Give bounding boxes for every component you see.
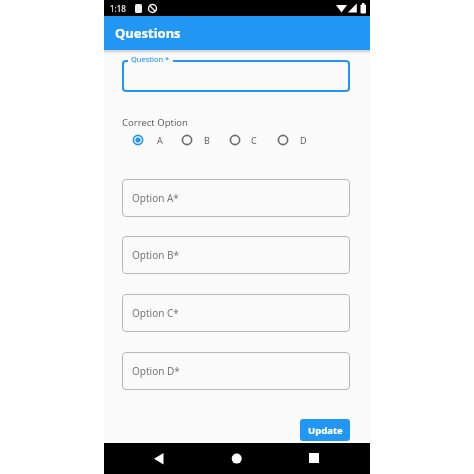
staticText: Correct Option — [122, 116, 188, 129]
button[interactable]: Option D* — [122, 352, 350, 390]
button[interactable] — [304, 448, 324, 468]
button[interactable] — [128, 130, 148, 150]
button[interactable] — [177, 130, 197, 150]
button[interactable]: Option B* — [122, 236, 350, 274]
staticText: C — [251, 134, 257, 146]
button[interactable] — [122, 60, 350, 92]
staticText: A — [157, 134, 163, 146]
button[interactable] — [227, 448, 247, 468]
staticText: Option D* — [132, 364, 180, 378]
staticText: B — [204, 134, 210, 146]
button[interactable]: Update — [300, 419, 350, 441]
button[interactable] — [149, 448, 169, 468]
staticText: Question * — [131, 54, 170, 64]
button[interactable]: Option C* — [122, 294, 350, 332]
staticText: Option A* — [132, 191, 179, 205]
staticText: Update — [308, 424, 343, 437]
staticText: D — [300, 134, 307, 146]
staticText: Option B* — [132, 248, 179, 262]
button[interactable] — [273, 130, 293, 150]
staticText: 1:18 — [110, 3, 126, 14]
staticText: Questions — [115, 24, 181, 42]
staticText: Option C* — [132, 306, 179, 320]
button[interactable]: Option A* — [122, 179, 350, 217]
button[interactable] — [225, 130, 245, 150]
